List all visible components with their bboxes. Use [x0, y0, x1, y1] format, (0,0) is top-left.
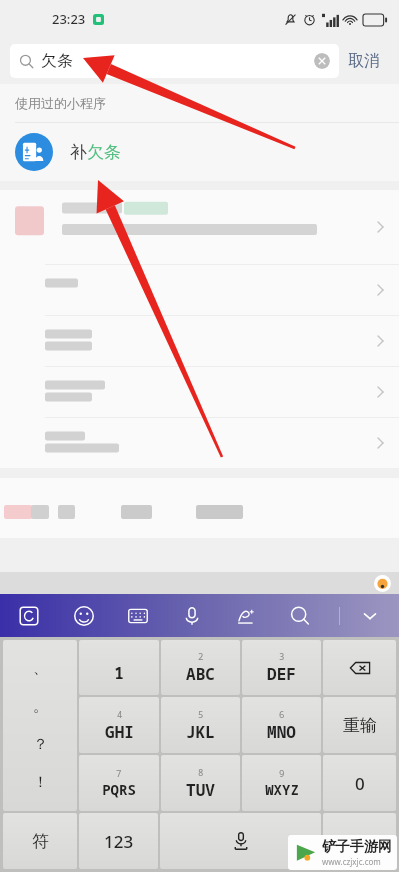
button[interactable]: 2: [161, 640, 240, 695]
staticText: MNO: [267, 721, 296, 743]
staticText: 6: [279, 708, 285, 720]
staticText: WXYZ: [265, 780, 299, 799]
button[interactable]: Hide keyboard: [355, 601, 385, 631]
button[interactable]: 、: [3, 640, 77, 811]
staticText: 8: [198, 766, 204, 778]
button[interactable]: Emoji: [69, 601, 99, 631]
staticText: 使用过的小程序: [15, 95, 106, 111]
button[interactable]: Voice input: [177, 601, 207, 631]
button[interactable]: 9: [242, 755, 321, 811]
button[interactable]: [0, 190, 399, 264]
staticText: 1: [114, 662, 124, 684]
button[interactable]: 1: [79, 640, 159, 695]
staticText: www.czjxjc.com: [322, 856, 381, 867]
staticText: 欠条: [41, 51, 73, 71]
staticText: 9: [279, 767, 285, 779]
button[interactable]: 取消: [339, 45, 389, 77]
button[interactable]: 5: [161, 697, 240, 753]
button[interactable]: 欠条: [10, 44, 339, 78]
button[interactable]: 0: [323, 755, 396, 811]
button[interactable]: Space / voice: [160, 813, 321, 869]
staticText: 0: [355, 772, 365, 795]
button[interactable]: Handwriting: [231, 601, 261, 631]
button[interactable]: Search: [285, 601, 315, 631]
staticText: 、: [33, 659, 48, 678]
button[interactable]: 符: [3, 813, 77, 869]
button[interactable]: Clear: [314, 53, 330, 69]
staticText: 。: [33, 697, 48, 716]
staticText: DEF: [267, 663, 296, 685]
button[interactable]: 6: [242, 697, 321, 753]
staticText: PQRS: [102, 780, 136, 799]
staticText: 补欠条: [70, 142, 121, 163]
button[interactable]: 3: [242, 640, 321, 695]
staticText: 取消: [348, 51, 380, 71]
button[interactable]: 7: [79, 755, 159, 811]
staticText: JKL: [186, 721, 215, 743]
button[interactable]: Assistant: [374, 575, 391, 592]
staticText: GHI: [105, 721, 134, 743]
staticText: ？: [33, 735, 48, 754]
button[interactable]: Keyboard layout: [123, 601, 153, 631]
button[interactable]: [0, 418, 399, 468]
staticText: 铲子手游网: [322, 838, 392, 856]
staticText: 5: [198, 708, 204, 720]
staticText: 3: [279, 650, 285, 662]
button[interactable]: [0, 316, 399, 366]
staticText: 123: [104, 830, 134, 853]
button[interactable]: Backspace: [323, 640, 396, 695]
staticText: TUV: [186, 779, 215, 801]
staticText: ！: [33, 773, 48, 792]
button[interactable]: [0, 265, 399, 315]
button[interactable]: 重输: [323, 697, 396, 753]
button[interactable]: [0, 367, 399, 417]
staticText: 2: [198, 650, 204, 662]
staticText: 4: [117, 708, 123, 720]
button[interactable]: 4: [79, 697, 159, 753]
button[interactable]: 8: [161, 755, 240, 811]
button[interactable]: 补欠条: [0, 123, 399, 181]
button[interactable]: [0, 478, 399, 538]
staticText: 23:23: [52, 10, 86, 28]
staticText: 7: [116, 767, 122, 779]
button[interactable]: Sogou input: [14, 601, 44, 631]
staticText: 符: [32, 831, 49, 852]
button[interactable]: [323, 813, 396, 869]
staticText: 重输: [343, 715, 377, 736]
staticText: ABC: [186, 663, 215, 685]
button[interactable]: 123: [79, 813, 158, 869]
